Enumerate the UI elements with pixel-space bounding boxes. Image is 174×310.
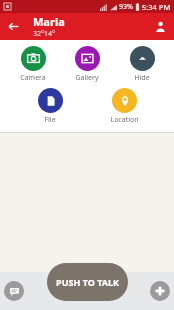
- staticText: Gallery: [75, 73, 99, 83]
- button[interactable]: PUSH TO TALK: [47, 263, 128, 301]
- staticText: Camera: [20, 73, 46, 83]
- button[interactable]: Hide: [120, 45, 164, 84]
- button[interactable]: Gallery: [65, 45, 109, 84]
- staticText: PUSH TO TALK: [56, 276, 119, 288]
- staticText: File: [44, 115, 56, 125]
- staticText: Maria: [33, 14, 65, 29]
- staticText: 93%: [119, 2, 133, 12]
- button[interactable]: Messages: [4, 281, 24, 301]
- staticText: Location: [110, 115, 139, 125]
- button[interactable]: Location: [102, 87, 146, 126]
- button[interactable]: File: [28, 87, 72, 126]
- button[interactable]: Back: [0, 13, 27, 40]
- button[interactable]: Add: [150, 281, 170, 301]
- staticText: 5:34 PM: [142, 2, 171, 12]
- button[interactable]: Contact: [147, 13, 174, 40]
- staticText: 32°14°: [33, 29, 56, 39]
- button[interactable]: Camera: [11, 45, 55, 84]
- staticText: Hide: [134, 73, 150, 83]
